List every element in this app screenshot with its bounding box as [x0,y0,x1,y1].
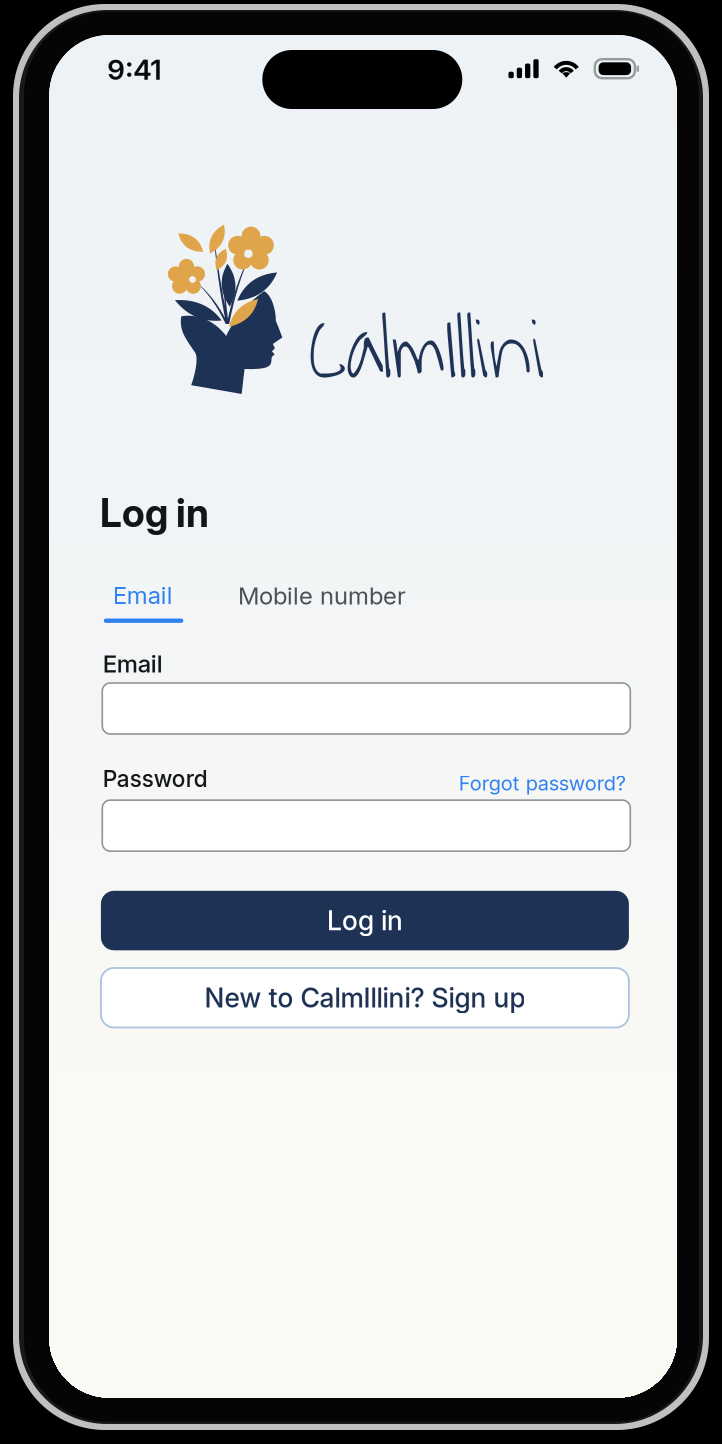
button[interactable]: Mobile number [238,581,406,610]
staticText: Email [103,650,163,678]
staticText: Forgot password? [459,771,626,795]
button[interactable]: Forgot password? [459,771,626,795]
button[interactable]: New to CalmIllini? Sign up [101,968,629,1027]
button[interactable]: Email [98,582,194,616]
staticText: Log in [327,905,403,936]
button[interactable]: Log in [101,891,629,950]
staticText: Mobile number [238,581,406,610]
staticText: Email [113,581,173,609]
staticText: Password [103,765,208,792]
staticText: Log in [100,490,209,536]
staticText: New to CalmIllini? Sign up [204,982,525,1013]
staticText: CalmIllini [309,279,544,424]
staticText: 9:41 [107,53,161,86]
